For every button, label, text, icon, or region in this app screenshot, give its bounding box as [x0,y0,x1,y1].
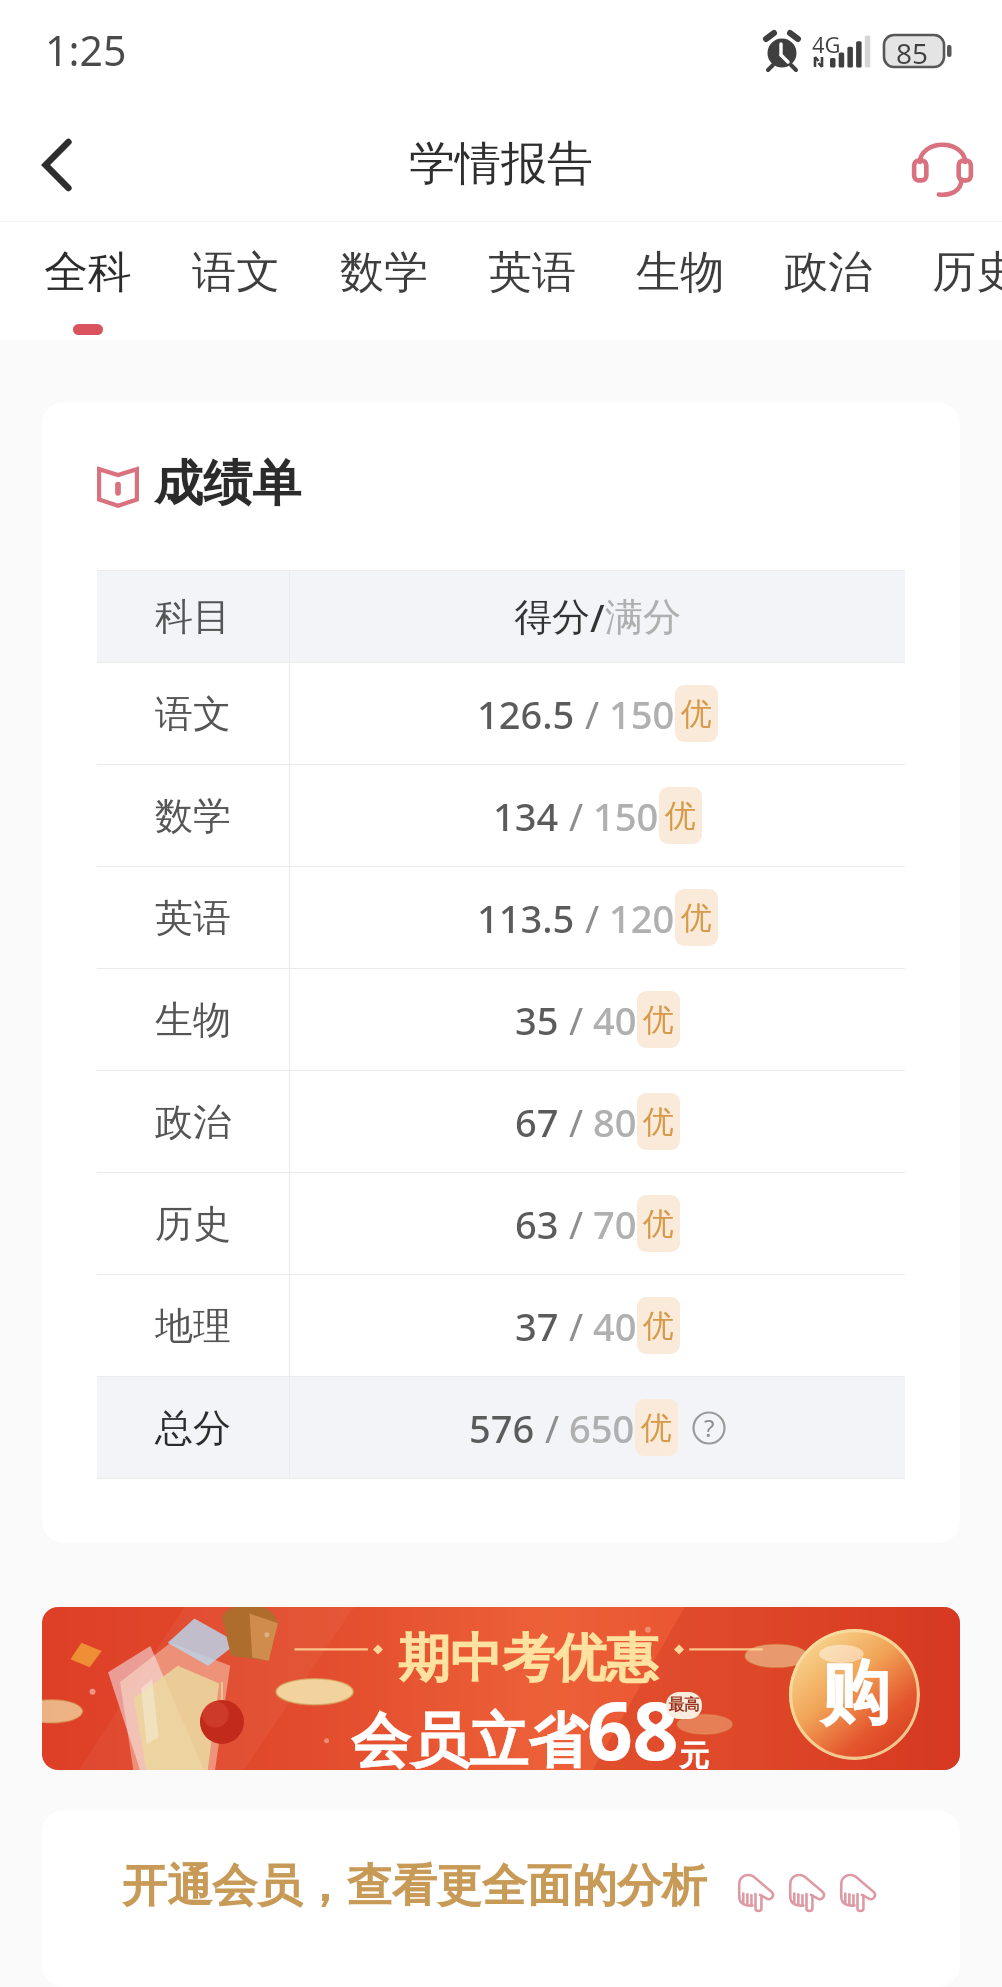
staticText: 最高 [668,1695,700,1715]
staticText: 40 [593,994,637,1046]
staticText: 优 [665,796,696,835]
staticText: 126.5 [477,688,575,740]
staticText: 80 [593,1096,637,1148]
button[interactable]: Buy [789,1629,920,1760]
staticText: 数学 [340,245,428,300]
staticText: 68 [587,1674,679,1770]
staticText: / [559,1096,593,1148]
staticText: 113.5 [477,892,575,944]
staticText: 优 [643,1000,674,1039]
staticText: 科目 [97,593,289,641]
staticText: / [590,591,605,643]
staticText: 650 [569,1402,635,1454]
staticText: 85 [896,34,929,72]
button[interactable]: Customer service [902,125,982,205]
staticText: 学情报告 [409,135,593,193]
staticText: 政治 [784,245,872,300]
staticText: 67 [515,1096,559,1148]
staticText: 会员立省 [351,1704,587,1770]
button[interactable]: 开通会员，查看更全面的分析 [42,1810,960,1987]
staticText: 40 [593,1300,637,1352]
staticText: 总分 [97,1404,289,1452]
staticText: 37 [515,1300,559,1352]
staticText: 优 [681,694,712,733]
staticText: 150 [593,790,659,842]
staticText: 1:25 [45,22,127,78]
button[interactable]: 生物 [636,222,724,324]
staticText: ? [704,1411,715,1444]
staticText: 英语 [97,894,289,942]
staticText: 70 [593,1198,637,1250]
staticText: 开通会员，查看更全面的分析 [122,1858,707,1915]
button[interactable]: 语文 [192,222,280,324]
staticText: 政治 [97,1098,289,1146]
staticText: 生物 [97,996,289,1044]
staticText: 地理 [97,1302,289,1350]
staticText: 得分 [514,593,590,641]
staticText: / [575,688,609,740]
staticText: 语文 [97,690,289,738]
staticText: 购 [820,1650,890,1738]
staticText: 全科 [44,245,132,300]
staticText: 元 [679,1737,709,1770]
button[interactable]: 期中考优惠 [42,1607,960,1770]
staticText: 语文 [192,245,280,300]
staticText: / [559,994,593,1046]
staticText: 优 [643,1306,674,1345]
staticText: 英语 [488,245,576,300]
staticText: 120 [609,892,675,944]
staticText: 优 [681,898,712,937]
staticText: 历史 [932,245,1002,300]
button[interactable]: 历史 [932,222,1002,324]
staticText: 生物 [636,245,724,300]
staticText: / [559,1198,593,1250]
staticText: / [559,1300,593,1352]
staticText: / [535,1402,569,1454]
staticText: 优 [641,1408,672,1447]
staticText: 150 [609,688,675,740]
staticText: 35 [515,994,559,1046]
staticText: 优 [643,1102,674,1141]
staticText: 期中考优惠 [398,1626,658,1692]
staticText: 优 [643,1204,674,1243]
button[interactable]: 政治 [784,222,872,324]
staticText: 4G [812,29,841,59]
staticText: / [559,790,593,842]
staticText: / [575,892,609,944]
button[interactable]: 全科 [44,222,132,335]
staticText: 134 [493,790,559,842]
staticText: 63 [515,1198,559,1250]
button[interactable]: Back [17,125,97,205]
staticText: 满分 [605,593,681,641]
staticText: 576 [469,1402,535,1454]
button[interactable]: Total score info [692,1411,726,1445]
button[interactable]: 数学 [340,222,428,324]
staticText: 成绩单 [154,453,301,515]
staticText: 历史 [97,1200,289,1248]
staticText: 数学 [97,792,289,840]
button[interactable]: 英语 [488,222,576,324]
